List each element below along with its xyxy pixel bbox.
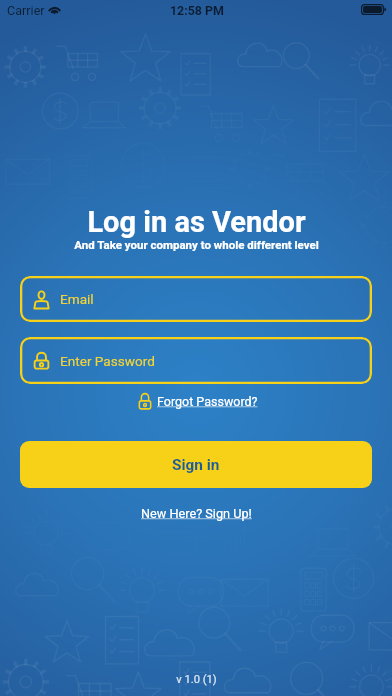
staticText: Enter Password <box>60 353 155 369</box>
button[interactable]: Enter Password <box>20 337 372 384</box>
staticText: And Take your company to whole different… <box>74 238 319 251</box>
other: Wi-Fi <box>48 5 61 15</box>
staticText: Carrier <box>7 3 45 18</box>
staticText: 12:58 PM <box>170 3 224 18</box>
staticText: Forgot Password? <box>157 394 258 409</box>
staticText: Sign in <box>172 456 220 474</box>
staticText: Log in as Vendor <box>87 205 306 239</box>
other: Battery <box>361 4 388 15</box>
staticText: v 1.0 (1) <box>176 673 217 686</box>
button[interactable]: Forgot Password? <box>135 390 261 412</box>
button[interactable]: Email <box>20 276 372 322</box>
staticText: Email <box>60 291 94 307</box>
button[interactable]: Sign in <box>20 441 372 488</box>
staticText: New Here? Sign Up! <box>141 506 252 521</box>
button[interactable]: New Here? Sign Up! <box>138 504 255 523</box>
